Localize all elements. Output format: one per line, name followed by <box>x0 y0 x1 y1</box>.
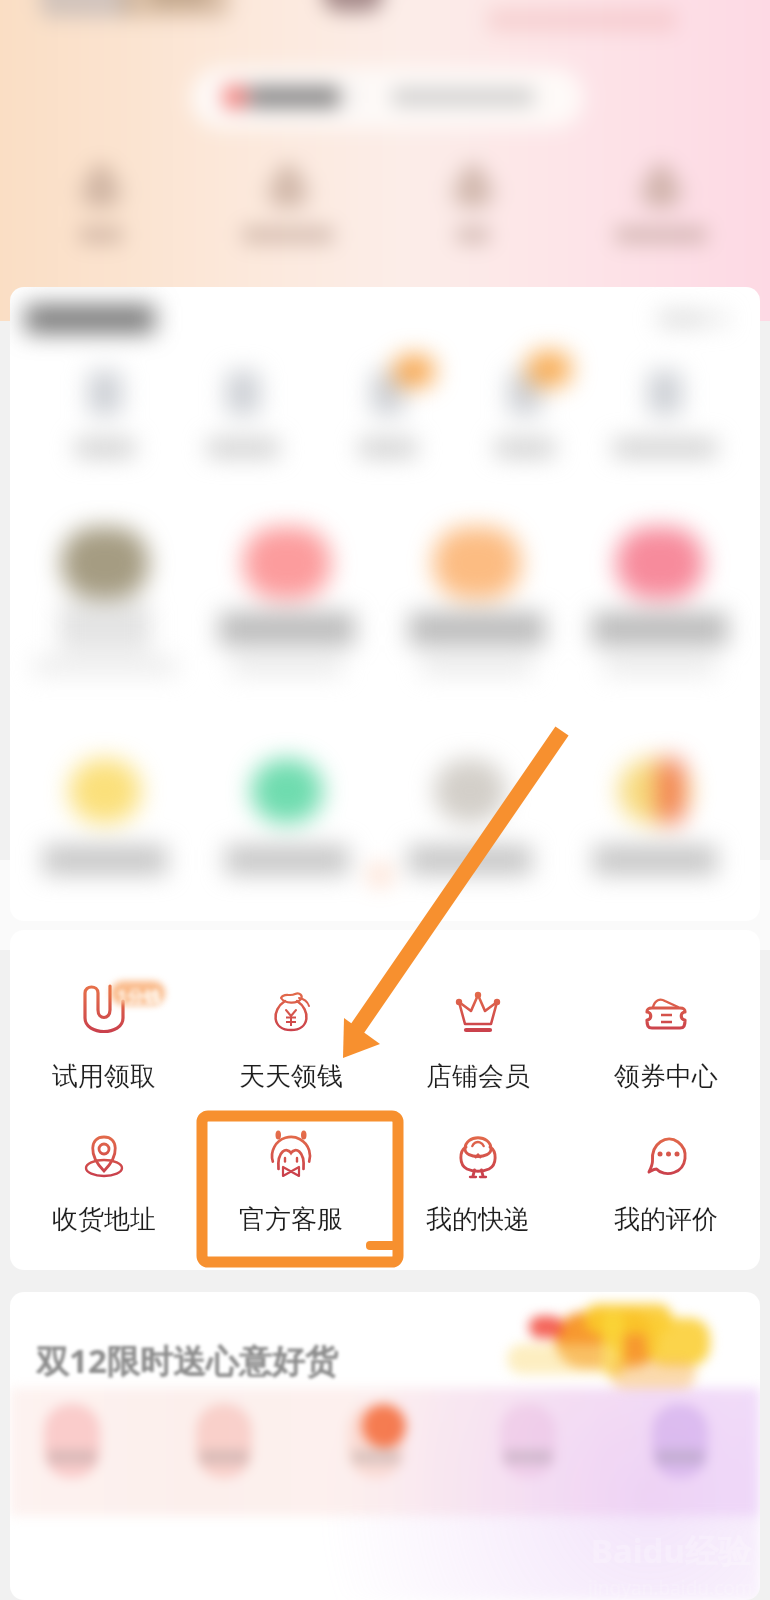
button[interactable]: Address <box>10 1127 197 1236</box>
staticText: 店铺会员 <box>426 1060 530 1093</box>
staticText: 我的评价 <box>614 1203 718 1236</box>
button[interactable]: Customer service <box>197 1127 384 1236</box>
staticText: jingyan.baidu.com <box>588 1575 753 1600</box>
staticText: 收货地址 <box>52 1203 156 1236</box>
staticText: 1分钱 <box>117 985 161 1008</box>
staticText: 天天领钱 <box>239 1060 343 1093</box>
button[interactable]: Trial <box>10 984 197 1093</box>
staticText: 试用领取 <box>52 1060 156 1093</box>
button[interactable]: Daily money <box>197 984 384 1093</box>
button[interactable]: Coupons <box>572 984 760 1093</box>
button[interactable]: My reviews <box>572 1127 760 1236</box>
staticText: 我的快递 <box>426 1203 530 1236</box>
staticText: 双12限时送心意好货 <box>36 1338 338 1383</box>
staticText: 领券中心 <box>614 1060 718 1093</box>
button[interactable]: My delivery <box>384 1127 572 1236</box>
button[interactable]: Shop member <box>384 984 572 1093</box>
staticText: 官方客服 <box>239 1203 343 1236</box>
